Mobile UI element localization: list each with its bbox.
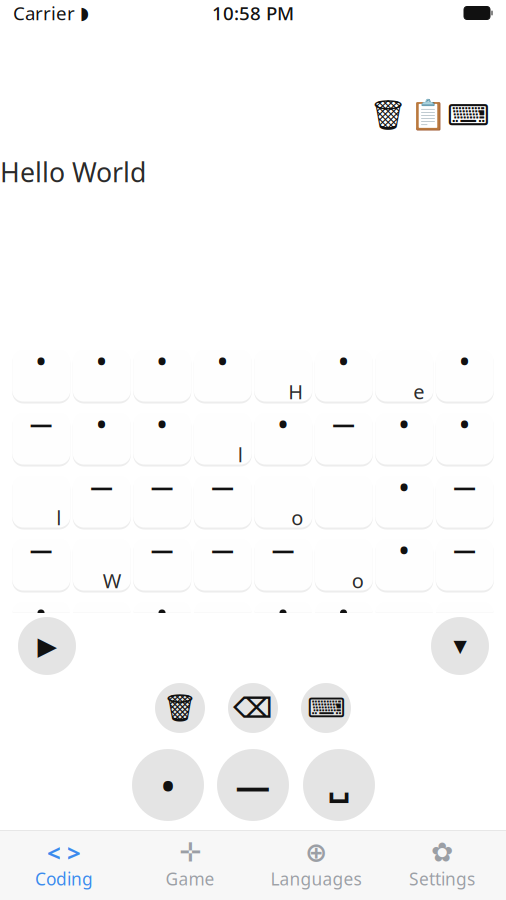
staticText: 10:58 PM — [212, 1, 294, 25]
staticText: — — [453, 534, 476, 564]
button[interactable] — [315, 536, 373, 592]
staticText: — — [332, 408, 355, 438]
staticText: Hello World — [0, 154, 146, 190]
staticText: • — [339, 344, 349, 377]
button[interactable]: Show keyboard — [448, 95, 488, 135]
button[interactable]: < > — [1, 834, 127, 896]
button[interactable]: • — [133, 410, 191, 466]
button[interactable]: — — [12, 536, 70, 592]
staticText: H — [288, 378, 303, 405]
staticText: • — [97, 344, 107, 377]
button[interactable] — [254, 347, 312, 403]
button[interactable]: ✛ — [127, 834, 253, 896]
button[interactable]: Keyboard — [301, 683, 351, 733]
staticText: < > — [47, 836, 81, 868]
button[interactable]: — — [254, 536, 312, 592]
staticText: — — [211, 534, 234, 564]
staticText: • — [339, 596, 349, 629]
button[interactable]: • — [73, 410, 131, 466]
staticText: • — [399, 407, 409, 440]
button[interactable]: • — [375, 473, 433, 529]
button[interactable]: • — [12, 599, 70, 655]
button[interactable]: — — [194, 536, 252, 592]
button[interactable]: Play — [18, 617, 76, 675]
button[interactable]: • — [12, 347, 70, 403]
staticText: • — [399, 533, 409, 566]
staticText: — — [453, 597, 476, 627]
staticText: l — [238, 441, 243, 468]
staticText: • — [157, 407, 167, 440]
staticText: • — [278, 596, 288, 629]
button[interactable]: • — [315, 599, 373, 655]
staticText: • — [161, 762, 174, 808]
button[interactable]: Dot — [132, 749, 204, 821]
staticText: • — [460, 407, 470, 440]
staticText: • — [157, 344, 167, 377]
staticText: — — [90, 471, 113, 501]
staticText: 🗑 — [163, 693, 197, 723]
button[interactable]: Delete — [228, 683, 278, 733]
button[interactable] — [73, 599, 131, 655]
button[interactable]: • — [73, 347, 131, 403]
staticText: e — [413, 378, 424, 405]
staticText: Game — [165, 867, 214, 890]
button[interactable]: • — [194, 347, 252, 403]
button[interactable]: Clear text — [368, 95, 408, 135]
button[interactable]: • — [375, 410, 433, 466]
button[interactable]: • — [254, 599, 312, 655]
button[interactable]: Copy to clipboard — [408, 95, 448, 135]
staticText: ⌫ — [233, 692, 273, 724]
staticText: l — [56, 504, 61, 531]
staticText: ␣ — [327, 767, 350, 803]
button[interactable]: Clear — [155, 683, 205, 733]
staticText: • — [36, 344, 46, 377]
staticText: Coding — [35, 867, 93, 890]
button[interactable] — [375, 347, 433, 403]
button[interactable]: — — [436, 536, 494, 592]
staticText: ✿ — [431, 837, 453, 867]
button[interactable]: Collapse — [431, 617, 489, 675]
staticText: • — [218, 344, 228, 377]
staticText: — — [30, 534, 53, 564]
button[interactable]: • — [133, 599, 191, 655]
button[interactable]: — — [12, 410, 70, 466]
button[interactable]: — — [133, 473, 191, 529]
button[interactable]: — — [73, 473, 131, 529]
button[interactable]: • — [436, 347, 494, 403]
button[interactable]: • — [254, 410, 312, 466]
staticText: — — [151, 471, 174, 501]
button[interactable]: — — [194, 473, 252, 529]
staticText: — — [30, 408, 53, 438]
button[interactable]: ⊕ — [253, 834, 379, 896]
button[interactable]: Space — [303, 749, 375, 821]
staticText: W — [103, 567, 122, 594]
staticText: • — [460, 344, 470, 377]
staticText: — — [211, 471, 234, 501]
staticText: 🗑 — [369, 98, 406, 132]
staticText: o — [291, 504, 303, 531]
staticText: ⌨ — [447, 98, 489, 132]
button[interactable] — [73, 536, 131, 592]
staticText: ⊕ — [305, 837, 327, 867]
button[interactable]: ✿ — [379, 834, 505, 896]
button[interactable] — [12, 473, 70, 529]
button[interactable]: — — [315, 410, 373, 466]
button[interactable]: • — [375, 536, 433, 592]
button[interactable]: Dash — [217, 749, 289, 821]
button[interactable]: — — [436, 473, 494, 529]
button[interactable] — [254, 473, 312, 529]
staticText: 📋 — [409, 98, 446, 132]
button[interactable]: • — [315, 347, 373, 403]
staticText: — — [151, 534, 174, 564]
staticText: Carrier — [13, 1, 75, 25]
button[interactable]: — — [436, 599, 494, 655]
button[interactable]: • — [436, 410, 494, 466]
button[interactable] — [194, 410, 252, 466]
staticText: ▼ — [453, 636, 466, 656]
button[interactable]: — — [133, 536, 191, 592]
staticText: — — [272, 534, 295, 564]
button[interactable]: • — [133, 347, 191, 403]
